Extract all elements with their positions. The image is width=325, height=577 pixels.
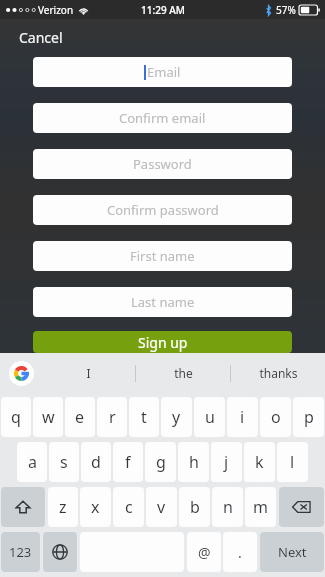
staticText: j <box>224 451 229 473</box>
button[interactable]: Email <box>33 57 292 87</box>
button[interactable]: Backspace <box>279 487 324 527</box>
staticText: x <box>91 496 100 518</box>
staticText: Last name <box>131 293 195 311</box>
button[interactable]: i <box>227 397 258 437</box>
staticText: q <box>11 406 21 428</box>
staticText: 123 <box>9 543 32 561</box>
staticText: p <box>304 406 314 428</box>
button[interactable]: I <box>42 353 135 393</box>
button[interactable]: @ <box>187 532 221 572</box>
staticText: o <box>271 406 281 428</box>
button[interactable]: h <box>178 442 209 482</box>
button[interactable]: m <box>245 487 276 527</box>
button[interactable]: Google search <box>9 361 34 386</box>
staticText: c <box>125 496 133 518</box>
staticText: 57% <box>276 3 296 17</box>
button[interactable]: n <box>212 487 243 527</box>
button[interactable]: r <box>97 397 127 437</box>
staticText: . <box>238 543 242 562</box>
button[interactable]: Sign up <box>33 331 292 353</box>
button[interactable]: s <box>49 442 79 482</box>
staticText: m <box>253 496 268 518</box>
staticText: Next <box>278 543 307 561</box>
staticText: z <box>59 496 67 518</box>
button[interactable]: l <box>277 442 308 482</box>
staticText: Sign up <box>138 333 188 352</box>
button[interactable]: Confirm email <box>33 103 292 133</box>
button[interactable]: First name <box>33 241 292 271</box>
staticText: k <box>255 451 264 473</box>
staticText: n <box>223 496 233 518</box>
button[interactable]: the <box>136 353 230 393</box>
staticText: e <box>75 406 85 428</box>
staticText: h <box>189 451 199 473</box>
staticText: y <box>172 406 181 428</box>
staticText: w <box>42 406 55 428</box>
button[interactable]: q <box>1 397 31 437</box>
staticText: t <box>141 406 147 428</box>
staticText: Cancel <box>19 28 63 47</box>
button[interactable]: Shift <box>1 487 45 527</box>
button[interactable]: g <box>145 442 176 482</box>
button[interactable]: z <box>48 487 78 527</box>
button[interactable]: u <box>194 397 225 437</box>
staticText: thanks <box>259 365 298 381</box>
staticText: d <box>91 451 101 473</box>
staticText: Email <box>147 63 181 81</box>
button[interactable]: . <box>223 532 257 572</box>
staticText: 11:29 AM <box>141 3 185 17</box>
button[interactable]: p <box>293 397 324 437</box>
button[interactable]: Password <box>33 149 292 179</box>
staticText: b <box>190 496 200 518</box>
button[interactable]: Confirm password <box>33 195 292 225</box>
staticText: the <box>174 365 193 381</box>
button[interactable]: a <box>17 442 47 482</box>
button[interactable]: Next <box>260 532 324 572</box>
button[interactable]: t <box>129 397 159 437</box>
staticText: a <box>28 451 37 473</box>
button[interactable]: Last name <box>33 287 292 317</box>
staticText: Confirm email <box>119 109 206 127</box>
button[interactable]: Cancel <box>16 26 66 49</box>
button[interactable]: o <box>260 397 291 437</box>
staticText: i <box>240 406 245 428</box>
staticText: g <box>156 451 166 473</box>
button[interactable]: j <box>211 442 242 482</box>
staticText: r <box>109 406 116 428</box>
button[interactable]: k <box>244 442 275 482</box>
button[interactable]: thanks <box>231 353 325 393</box>
staticText: v <box>157 496 166 518</box>
staticText: s <box>60 451 68 473</box>
staticText: l <box>290 451 295 473</box>
button[interactable]: w <box>33 397 63 437</box>
staticText: Confirm password <box>107 201 219 219</box>
staticText: f <box>125 451 131 473</box>
button[interactable]: x <box>80 487 111 527</box>
staticText: Verizon <box>38 3 74 17</box>
button[interactable]: y <box>161 397 192 437</box>
button[interactable]: e <box>65 397 95 437</box>
button[interactable]: 123 <box>1 532 40 572</box>
button[interactable]: b <box>179 487 210 527</box>
staticText: I <box>86 365 91 381</box>
staticText: Password <box>133 155 192 173</box>
staticText: u <box>205 406 215 428</box>
button[interactable]: Change language <box>43 532 77 572</box>
button[interactable]: f <box>113 442 143 482</box>
button[interactable]: d <box>81 442 111 482</box>
staticText: First name <box>130 247 195 265</box>
staticText: @ <box>198 543 211 562</box>
button[interactable]: v <box>146 487 177 527</box>
button[interactable]: c <box>113 487 144 527</box>
